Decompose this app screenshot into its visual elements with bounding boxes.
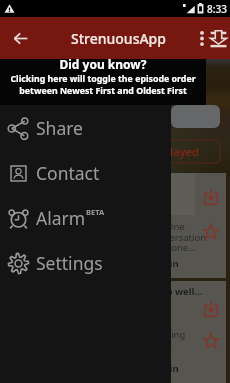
staticText: Settings <box>36 251 103 275</box>
button[interactable]: Navigate up <box>0 17 40 59</box>
staticText: Conversation <box>147 231 207 244</box>
button[interactable]: Share <box>0 105 171 150</box>
button[interactable]: Did you know? <box>0 59 206 105</box>
staticText: 25 ★ ... <box>147 342 174 353</box>
staticText: Did you know? <box>59 56 147 72</box>
button[interactable]: Contact <box>0 150 171 195</box>
staticText: Clicking here will toggle the episode or… <box>10 73 196 85</box>
button[interactable]: Alarm <box>0 195 171 240</box>
staticText: The One <box>147 220 185 233</box>
staticText: BETA <box>86 207 105 217</box>
button[interactable]: Favorite episode <box>203 224 219 240</box>
staticText: Played <box>163 144 199 160</box>
button[interactable]: Settings <box>0 240 171 285</box>
button[interactable]: More options <box>195 17 208 59</box>
button[interactable]: Download episode <box>204 188 218 205</box>
button[interactable]: Download episode <box>0 173 226 278</box>
button[interactable]: Download episode <box>0 281 226 383</box>
staticText: 45 min <box>147 257 179 270</box>
staticText: Alarm <box>36 206 86 230</box>
staticText: Sleep well... <box>147 285 203 298</box>
button[interactable]: Favorite episode <box>203 333 219 349</box>
staticText: StrenuousApp <box>71 29 166 48</box>
staticText: Morning <box>147 328 186 341</box>
staticText: 31 min <box>147 362 179 375</box>
staticText: between Newest First and Oldest First <box>19 85 187 97</box>
button[interactable]: Download all episodes <box>208 17 229 59</box>
staticText: Share <box>36 116 83 140</box>
button[interactable]: Played <box>147 140 220 163</box>
button[interactable]: Download episode <box>204 300 218 317</box>
staticText: 8:33 <box>207 2 227 16</box>
staticText: Everyone... <box>147 241 196 254</box>
staticText: Contact <box>36 161 100 185</box>
